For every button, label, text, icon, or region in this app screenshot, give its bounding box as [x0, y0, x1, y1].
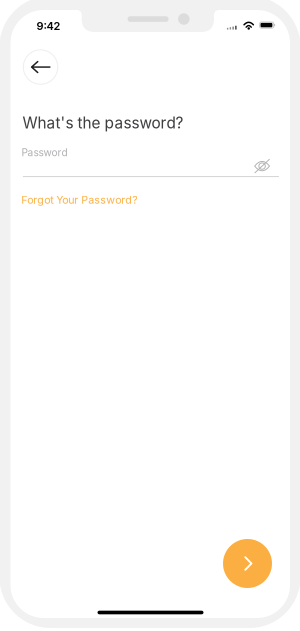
staticText: 9:42: [36, 19, 60, 32]
staticText: What's the password?: [22, 114, 183, 132]
staticText: Password: [22, 146, 68, 159]
button[interactable]: Continue: [223, 539, 272, 588]
button[interactable]: Forgot Your Password?: [21, 193, 137, 206]
button[interactable]: Show password: [254, 159, 270, 173]
staticText: Forgot Your Password?: [21, 193, 137, 206]
button[interactable]: Back: [23, 49, 58, 85]
